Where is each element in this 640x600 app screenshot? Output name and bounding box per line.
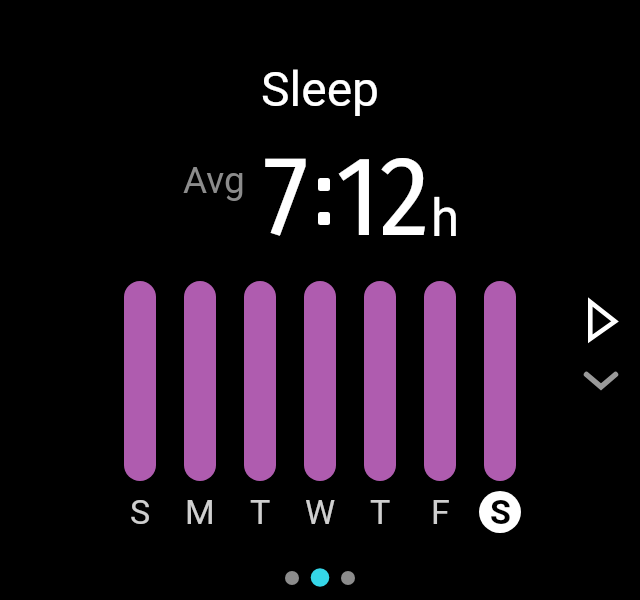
staticText: S: [490, 492, 511, 532]
button[interactable]: [580, 364, 624, 400]
button[interactable]: [580, 293, 626, 351]
staticText: S: [130, 492, 151, 532]
staticText: T: [250, 492, 271, 532]
staticText: 12: [336, 130, 430, 264]
staticText: Sleep: [261, 61, 380, 117]
staticText: h: [431, 189, 460, 249]
staticText: M: [185, 492, 215, 532]
staticText: W: [305, 492, 336, 532]
staticText: F: [431, 492, 450, 532]
staticText: 7: [263, 130, 309, 264]
staticText: T: [370, 492, 391, 532]
staticText: Avg: [183, 159, 245, 202]
